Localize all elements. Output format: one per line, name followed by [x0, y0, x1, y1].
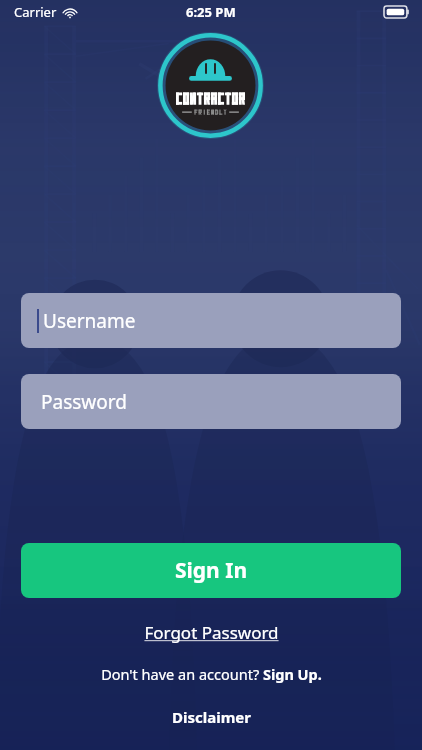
button[interactable]: Forgot Password — [0, 618, 422, 646]
staticText: 6:25 PM — [186, 3, 236, 21]
staticText: Disclaimer — [172, 707, 251, 727]
button[interactable]: Sign In — [21, 543, 401, 598]
staticText: Carrier — [14, 3, 57, 21]
staticText: Forgot Password — [144, 621, 279, 644]
button[interactable]: Password — [21, 374, 401, 429]
button[interactable]: Username — [21, 293, 401, 348]
staticText: Username — [43, 308, 136, 334]
staticText: Don't have an account? Sign Up. — [101, 664, 322, 684]
staticText: Password — [41, 389, 127, 415]
staticText: Sign In — [175, 556, 248, 585]
button[interactable]: Disclaimer — [0, 703, 422, 731]
button[interactable]: Don't have an account? Sign Up. — [0, 661, 422, 687]
